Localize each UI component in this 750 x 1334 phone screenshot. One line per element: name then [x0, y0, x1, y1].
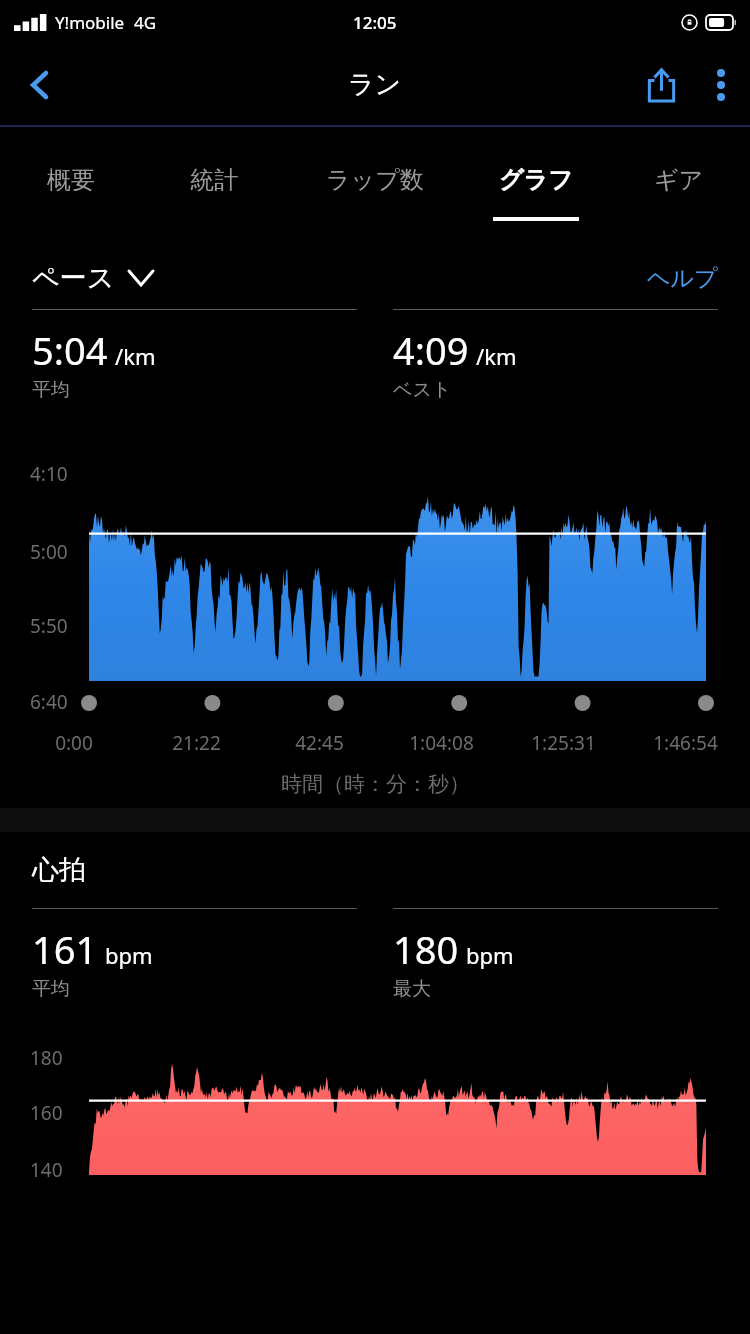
button[interactable]: Share: [630, 54, 692, 116]
button[interactable]: 概要: [0, 127, 142, 247]
staticText: Y!mobile: [55, 11, 125, 34]
button[interactable]: 統計: [142, 127, 285, 247]
staticText: グラフ: [499, 165, 573, 195]
staticText: /km: [476, 341, 517, 371]
staticText: ベスト: [393, 378, 452, 402]
staticText: 5:50: [30, 613, 68, 639]
staticText: /km: [115, 341, 156, 371]
staticText: 平均: [32, 977, 70, 1001]
staticText: 1:46:54: [653, 730, 718, 756]
staticText: 1:04:08: [409, 730, 474, 756]
staticText: ペース: [32, 261, 115, 295]
staticText: 161: [32, 923, 98, 975]
button[interactable]: ラップ数: [285, 127, 464, 247]
button[interactable]: グラフ: [464, 127, 607, 247]
staticText: 統計: [190, 165, 238, 195]
staticText: 180: [30, 1045, 63, 1071]
staticText: 42:45: [295, 730, 344, 756]
staticText: 時間（時：分：秒）: [281, 771, 470, 797]
staticText: 140: [30, 1157, 63, 1183]
staticText: bpm: [466, 940, 514, 970]
button[interactable]: More options: [692, 56, 750, 114]
staticText: 21:22: [172, 730, 221, 756]
staticText: 4G: [134, 11, 157, 34]
staticText: 6:40: [30, 689, 68, 715]
staticText: ヘルプ: [647, 264, 718, 293]
staticText: 160: [30, 1100, 63, 1126]
button[interactable]: ペース: [32, 261, 153, 295]
staticText: ギア: [654, 165, 704, 195]
staticText: ラップ数: [326, 165, 424, 195]
staticText: 12:05: [353, 11, 397, 34]
button[interactable]: ヘルプ: [647, 264, 718, 293]
staticText: 平均: [32, 378, 70, 402]
staticText: 5:04: [32, 324, 108, 376]
staticText: bpm: [105, 940, 153, 970]
staticText: 180: [393, 923, 459, 975]
staticText: 5:00: [30, 539, 68, 565]
staticText: ラン: [348, 68, 402, 101]
button[interactable]: Back: [8, 53, 72, 117]
staticText: 4:09: [393, 324, 469, 376]
staticText: 最大: [393, 977, 431, 1001]
staticText: 心拍: [32, 853, 86, 887]
staticText: 0:00: [55, 730, 93, 756]
staticText: 概要: [47, 165, 95, 195]
staticText: 1:25:31: [531, 730, 596, 756]
button[interactable]: ギア: [607, 127, 750, 247]
staticText: 4:10: [30, 461, 68, 487]
